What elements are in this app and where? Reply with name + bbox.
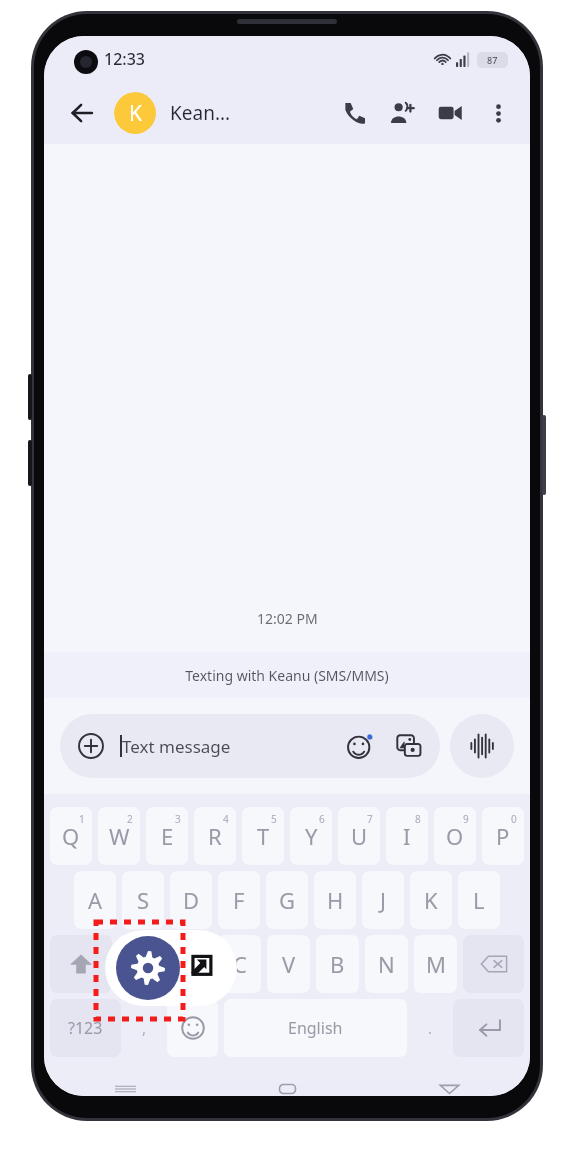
- staticText: T: [257, 821, 270, 851]
- staticText: Y: [305, 821, 318, 851]
- button[interactable]: K: [114, 92, 231, 134]
- staticText: X: [184, 949, 197, 979]
- staticText: E: [161, 821, 174, 851]
- button[interactable]: Call: [330, 89, 378, 137]
- button[interactable]: Q: [50, 807, 92, 865]
- button[interactable]: Back: [60, 91, 104, 135]
- button[interactable]: Voice message: [450, 714, 514, 778]
- staticText: N: [378, 949, 395, 979]
- button[interactable]: Y: [290, 807, 332, 865]
- staticText: H: [327, 885, 344, 915]
- button[interactable]: T: [242, 807, 284, 865]
- button[interactable]: Attach: [60, 714, 440, 778]
- button[interactable]: O: [434, 807, 476, 865]
- button[interactable]: F: [218, 871, 260, 929]
- staticText: J: [380, 885, 387, 915]
- button[interactable]: Emoji keyboard: [167, 999, 218, 1057]
- button[interactable]: Recent apps: [44, 1082, 206, 1096]
- button[interactable]: X: [168, 935, 212, 993]
- staticText: Z: [134, 949, 147, 979]
- staticText: Q: [62, 821, 80, 851]
- staticText: L: [473, 885, 485, 915]
- staticText: ,: [142, 1018, 147, 1038]
- button[interactable]: ?123: [50, 999, 121, 1057]
- button[interactable]: English: [224, 999, 407, 1057]
- button[interactable]: U: [338, 807, 380, 865]
- button[interactable]: Back: [368, 1082, 530, 1096]
- button[interactable]: Gallery: [393, 730, 425, 762]
- button[interactable]: More options: [474, 89, 522, 137]
- staticText: U: [351, 821, 368, 851]
- button[interactable]: J: [362, 871, 404, 929]
- staticText: 12:33: [104, 48, 145, 70]
- button[interactable]: P: [482, 807, 524, 865]
- button[interactable]: B: [316, 935, 359, 993]
- button[interactable]: A: [74, 871, 116, 929]
- staticText: 4: [223, 812, 229, 826]
- staticText: 0: [511, 812, 517, 826]
- staticText: ?123: [68, 1017, 103, 1039]
- button[interactable]: D: [170, 871, 212, 929]
- button[interactable]: Attach: [75, 730, 107, 762]
- button[interactable]: Backspace: [463, 935, 524, 993]
- staticText: G: [279, 885, 296, 915]
- button[interactable]: S: [122, 871, 164, 929]
- staticText: Text message: [122, 735, 231, 758]
- button[interactable]: Emoji: [344, 730, 376, 762]
- button[interactable]: L: [458, 871, 500, 929]
- button[interactable]: Home: [206, 1082, 368, 1096]
- staticText: Texting with Keanu (SMS/MMS): [185, 666, 389, 685]
- button[interactable]: Add person: [378, 89, 426, 137]
- button[interactable]: Shift: [50, 935, 112, 993]
- button[interactable]: M: [414, 935, 457, 993]
- button[interactable]: ,: [127, 999, 161, 1057]
- staticText: P: [496, 821, 510, 851]
- button[interactable]: I: [386, 807, 428, 865]
- button[interactable]: K: [410, 871, 452, 929]
- staticText: I: [403, 821, 411, 851]
- staticText: B: [330, 949, 345, 979]
- staticText: C: [233, 949, 247, 979]
- button[interactable]: N: [365, 935, 408, 993]
- staticText: D: [183, 885, 200, 915]
- staticText: 1: [79, 812, 85, 826]
- staticText: 7: [367, 812, 373, 826]
- staticText: K: [129, 99, 142, 128]
- staticText: 2: [127, 812, 133, 826]
- staticText: 8: [415, 812, 421, 826]
- button[interactable]: R: [194, 807, 236, 865]
- button[interactable]: Keyboard settings: [116, 936, 180, 1000]
- button[interactable]: W: [98, 807, 140, 865]
- staticText: .: [428, 1018, 433, 1038]
- staticText: R: [208, 821, 222, 851]
- button[interactable]: E: [146, 807, 188, 865]
- staticText: V: [282, 949, 296, 979]
- staticText: 6: [319, 812, 325, 826]
- staticText: English: [288, 1017, 343, 1039]
- staticText: W: [109, 821, 130, 851]
- staticText: 87: [487, 54, 498, 66]
- staticText: 9: [463, 812, 469, 826]
- staticText: A: [88, 885, 103, 915]
- button[interactable]: G: [266, 871, 308, 929]
- staticText: 12:02 PM: [257, 609, 318, 628]
- button[interactable]: C: [218, 935, 261, 993]
- button[interactable]: Video call: [426, 89, 474, 137]
- staticText: F: [233, 885, 245, 915]
- staticText: Kean...: [170, 100, 231, 126]
- staticText: 5: [271, 812, 277, 826]
- staticText: 3: [175, 812, 181, 826]
- staticText: M: [426, 949, 446, 979]
- staticText: K: [424, 885, 438, 915]
- button[interactable]: V: [267, 935, 310, 993]
- button[interactable]: Z: [118, 935, 162, 993]
- staticText: O: [446, 821, 464, 851]
- staticText: S: [137, 885, 150, 915]
- button[interactable]: H: [314, 871, 356, 929]
- button[interactable]: Enter: [453, 999, 524, 1057]
